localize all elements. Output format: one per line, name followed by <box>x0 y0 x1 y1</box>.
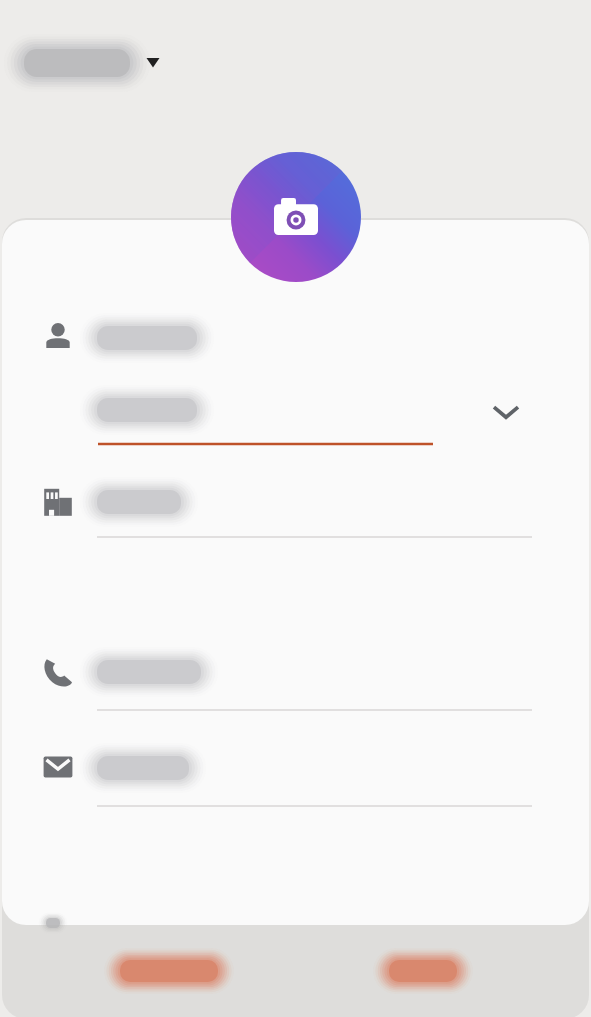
button[interactable]: Email <box>30 740 560 808</box>
button[interactable]: Save <box>364 946 482 998</box>
button[interactable]: Phone <box>30 644 560 712</box>
button[interactable]: Cancel <box>96 946 242 998</box>
button[interactable]: Account selector <box>16 40 176 84</box>
button[interactable]: Change photo <box>231 152 361 282</box>
button[interactable]: Work <box>30 474 560 540</box>
button[interactable]: Name type <box>30 382 560 448</box>
button[interactable]: Name <box>30 310 560 372</box>
button[interactable]: Expand <box>482 388 530 436</box>
